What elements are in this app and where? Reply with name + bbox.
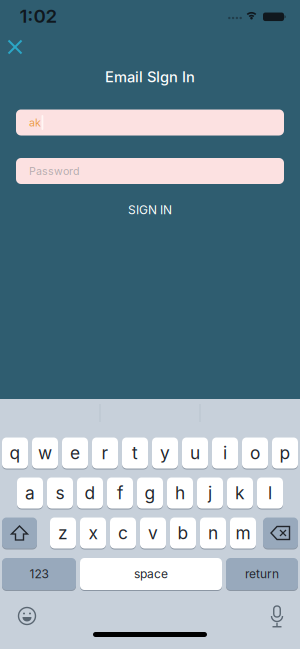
staticText: z <box>58 523 68 543</box>
button[interactable]: f <box>107 477 133 509</box>
staticText: SIGN IN <box>128 203 172 217</box>
button[interactable]: r <box>92 437 118 469</box>
button[interactable]: SIGN IN <box>105 197 195 223</box>
button[interactable]: g <box>137 477 163 509</box>
button[interactable]: j <box>197 477 223 509</box>
button[interactable] <box>265 604 289 628</box>
staticText: j <box>208 483 212 503</box>
button[interactable]: Password <box>16 158 284 184</box>
staticText: 123 <box>29 567 48 581</box>
staticText: s <box>55 483 64 503</box>
button[interactable]: t <box>122 437 148 469</box>
staticText: x <box>88 523 97 543</box>
button[interactable]: c <box>110 517 136 549</box>
button[interactable]: n <box>200 517 226 549</box>
staticText: t <box>132 443 138 463</box>
button[interactable]: u <box>182 437 208 469</box>
button[interactable]: m <box>230 517 256 549</box>
staticText: y <box>160 443 170 463</box>
staticText: d <box>84 483 95 503</box>
button[interactable]: v <box>140 517 166 549</box>
staticText: u <box>190 443 200 463</box>
button[interactable]: ak <box>16 109 284 135</box>
button[interactable]: i <box>212 437 238 469</box>
staticText: l <box>268 483 272 503</box>
staticText: p <box>279 443 290 463</box>
staticText: c <box>118 523 128 543</box>
button[interactable]: d <box>77 477 103 509</box>
button[interactable]: b <box>170 517 196 549</box>
staticText: f <box>117 483 123 503</box>
staticText: return <box>245 567 279 581</box>
button[interactable] <box>2 517 37 549</box>
button[interactable]: p <box>272 437 298 469</box>
staticText: w <box>38 443 52 463</box>
button[interactable]: y <box>152 437 178 469</box>
staticText: b <box>177 523 188 543</box>
staticText: 1:02 <box>19 5 57 27</box>
button[interactable] <box>263 517 298 549</box>
button[interactable]: w <box>32 437 58 469</box>
button[interactable]: h <box>167 477 193 509</box>
button[interactable]: l <box>257 477 283 509</box>
staticText: a <box>25 483 35 503</box>
staticText: r <box>101 443 108 463</box>
staticText: i <box>223 443 227 463</box>
staticText: g <box>144 483 155 503</box>
staticText: e <box>70 443 80 463</box>
staticText: Password <box>29 165 80 177</box>
button[interactable]: space <box>80 557 222 590</box>
button[interactable]: x <box>80 517 106 549</box>
staticText: n <box>208 523 218 543</box>
button[interactable]: e <box>62 437 88 469</box>
button[interactable]: 123 <box>2 557 76 590</box>
staticText: h <box>175 483 185 503</box>
button[interactable]: a <box>17 477 43 509</box>
button[interactable]: z <box>50 517 76 549</box>
button[interactable]: s <box>47 477 73 509</box>
staticText: m <box>235 523 250 543</box>
button[interactable]: q <box>2 437 28 469</box>
staticText: ak <box>29 116 41 129</box>
staticText: k <box>235 483 245 503</box>
staticText: o <box>250 443 260 463</box>
button[interactable] <box>2 34 28 60</box>
button[interactable] <box>15 604 39 628</box>
button[interactable]: o <box>242 437 268 469</box>
button[interactable]: k <box>227 477 253 509</box>
button[interactable]: return <box>226 557 298 590</box>
staticText: v <box>148 523 158 543</box>
staticText: space <box>134 567 168 581</box>
staticText: q <box>9 443 20 463</box>
staticText: Email SIgn In <box>105 68 195 86</box>
